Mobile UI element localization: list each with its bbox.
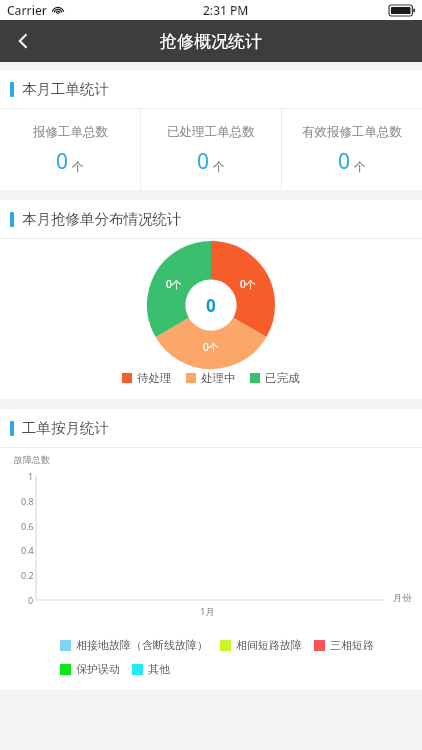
- staticText: 待处理: [137, 371, 172, 385]
- staticText: 0: [197, 147, 210, 176]
- staticText: Carrier: [7, 2, 47, 18]
- staticText: 0个: [203, 340, 219, 354]
- staticText: 0: [28, 594, 34, 606]
- staticText: 处理中: [201, 371, 236, 385]
- staticText: 月份: [393, 592, 412, 604]
- staticText: 个: [213, 159, 225, 174]
- staticText: 工单按月统计: [22, 419, 109, 437]
- staticText: 0: [56, 147, 69, 176]
- staticText: 故障总数: [14, 454, 50, 465]
- button[interactable]: 报修工单总数: [0, 109, 140, 190]
- staticText: 0.8: [21, 495, 34, 507]
- staticText: 个: [354, 159, 366, 174]
- staticText: 0个: [240, 277, 256, 291]
- staticText: 已处理工单总数: [167, 124, 255, 140]
- staticText: 三相短路: [330, 638, 374, 652]
- staticText: 报修工单总数: [33, 124, 108, 140]
- staticText: 个: [72, 159, 84, 174]
- staticText: 已完成: [265, 371, 300, 385]
- staticText: 相间短路故障: [236, 638, 302, 652]
- button[interactable]: 有效报修工单总数: [282, 109, 422, 190]
- staticText: 0.4: [21, 544, 34, 556]
- staticText: 0.2: [21, 569, 34, 581]
- staticText: 0: [338, 147, 351, 176]
- staticText: 0.6: [21, 520, 34, 532]
- staticText: 1月: [200, 605, 215, 618]
- staticText: 本月抢修单分布情况统计: [22, 210, 182, 228]
- staticText: 1: [28, 470, 34, 482]
- staticText: 2:31 PM: [203, 2, 249, 18]
- button[interactable]: Back: [0, 20, 46, 62]
- staticText: 0: [206, 294, 216, 317]
- staticText: 其他: [148, 662, 170, 676]
- staticText: 抢修概况统计: [160, 31, 262, 52]
- button[interactable]: 已处理工单总数: [141, 109, 281, 190]
- staticText: 0个: [166, 277, 182, 291]
- staticText: 保护误动: [76, 662, 120, 676]
- staticText: 相接地故障（含断线故障）: [76, 638, 208, 652]
- staticText: 本月工单统计: [22, 80, 109, 98]
- staticText: 有效报修工单总数: [302, 124, 402, 140]
